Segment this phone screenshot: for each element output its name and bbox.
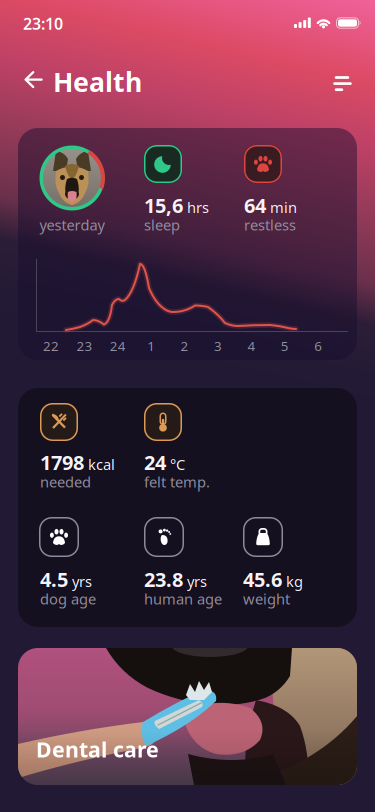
staticText: 24 [144,449,166,476]
staticText: dog age [40,589,96,608]
staticText: 23.8 [144,566,183,593]
button[interactable]: Back [16,63,51,97]
staticText: 5 [281,337,289,355]
staticText: 1798 [40,449,84,476]
staticText: 15,6 [144,192,183,219]
staticText: yrs [72,572,92,591]
staticText: 23 [76,337,92,355]
staticText: needed [40,472,91,491]
button[interactable]: Filter [325,62,360,93]
staticText: 4 [247,337,255,355]
staticText: 4.5 [40,566,68,593]
staticText: °C [170,455,185,474]
staticText: yrs [187,572,207,591]
staticText: 24 [110,337,126,355]
staticText: yesterday [39,215,104,234]
staticText: 23:10 [23,13,63,34]
staticText: Health [53,64,142,99]
staticText: 6 [314,337,322,355]
staticText: 45.6 [243,566,282,593]
staticText: 1 [147,337,155,355]
staticText: sleep [144,215,180,234]
staticText: hrs [187,198,209,217]
staticText: Dental care [36,735,159,763]
staticText: 3 [214,337,222,355]
button[interactable]: Dental care [18,648,357,785]
staticText: min [270,198,297,217]
staticText: human age [144,589,222,608]
staticText: 22 [43,337,59,355]
staticText: felt temp. [144,472,210,491]
staticText: 2 [181,337,189,355]
staticText: 64 [244,192,266,219]
staticText: weight [243,589,290,608]
staticText: kcal [88,455,115,474]
staticText: kg [286,572,303,591]
staticText: restless [244,215,296,234]
